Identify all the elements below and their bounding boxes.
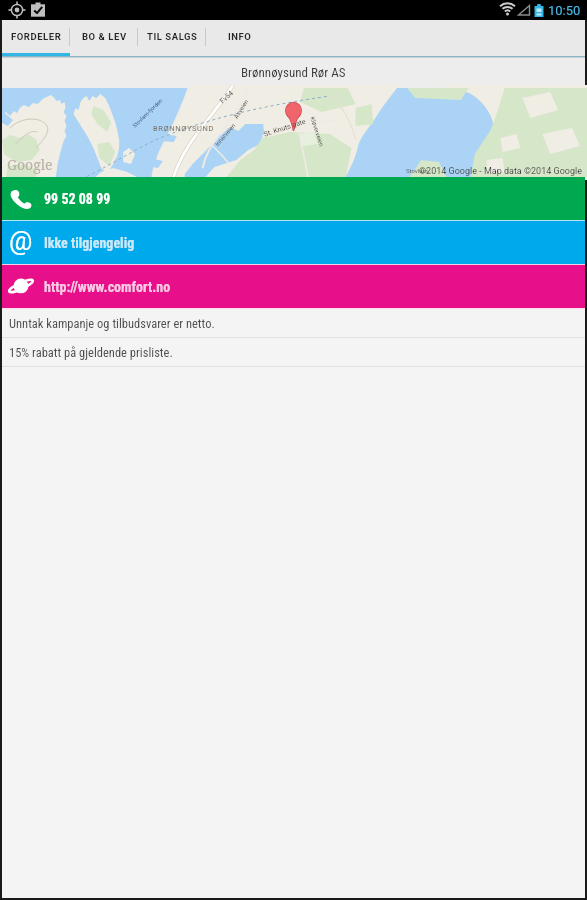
staticText: Innerveien bbox=[213, 121, 237, 147]
staticText: FORDELER bbox=[11, 31, 62, 42]
button[interactable]: FORDELER bbox=[2, 20, 70, 58]
button[interactable]: Unntak kampanje og tilbudsvarer er netto… bbox=[2, 309, 585, 337]
staticText: Stovlam… bbox=[406, 167, 432, 174]
staticText: http://www.comfort.no bbox=[44, 279, 171, 295]
button[interactable]: 15% rabatt på gjeldende prisliste. bbox=[2, 338, 585, 366]
button[interactable]: INFO bbox=[206, 20, 274, 58]
staticText: Kløverveien bbox=[309, 116, 326, 147]
staticText: BO & LEV bbox=[82, 31, 127, 42]
staticText: INFO bbox=[228, 31, 252, 42]
staticText: St. Knuts gate bbox=[263, 117, 307, 139]
staticText: 99 52 08 99 bbox=[44, 191, 111, 207]
button[interactable]: TIL SALGS bbox=[138, 20, 206, 58]
staticText: Åsveien bbox=[232, 97, 250, 120]
button[interactable]: http://www.comfort.no bbox=[2, 265, 585, 308]
staticText: Unntak kampanje og tilbudsvarer er netto… bbox=[9, 316, 215, 331]
staticText: @ bbox=[9, 226, 33, 256]
staticText: Google bbox=[7, 155, 53, 174]
button[interactable]: @ bbox=[2, 221, 585, 264]
staticText: Brønnøysund Rør AS bbox=[241, 65, 346, 80]
button[interactable]: Map bbox=[2, 88, 585, 177]
button[interactable]: BO & LEV bbox=[70, 20, 138, 58]
staticText: ©2014 Google - Map data ©2014 Google bbox=[419, 166, 582, 177]
staticText: BRØNNØYSUND bbox=[153, 124, 214, 133]
staticText: Stovlam-fjorden bbox=[131, 97, 164, 129]
staticText: Fv54 bbox=[218, 89, 236, 105]
staticText: TIL SALGS bbox=[147, 31, 198, 42]
staticText: 10:50 bbox=[548, 3, 581, 18]
staticText: 15% rabatt på gjeldende prisliste. bbox=[9, 345, 173, 360]
button[interactable]: 99 52 08 99 bbox=[2, 177, 585, 220]
staticText: Ikke tilgjengelig bbox=[44, 235, 135, 251]
